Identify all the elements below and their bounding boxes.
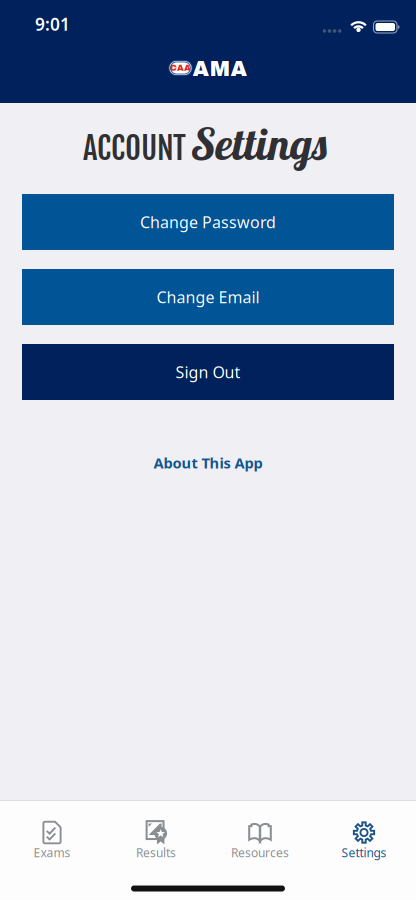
staticText: ACCOUNT — [83, 129, 186, 168]
button[interactable]: Change Email — [22, 269, 394, 325]
button[interactable]: Change Password — [22, 194, 394, 250]
staticText: AMA — [192, 57, 247, 80]
button[interactable]: Resources — [208, 817, 312, 863]
button[interactable]: Exams — [0, 817, 104, 863]
button[interactable]: Sign Out — [22, 344, 394, 400]
staticText: Results — [136, 844, 176, 860]
staticText: 9:01 — [35, 12, 70, 35]
staticText: Exams — [33, 844, 70, 860]
staticText: Settings — [192, 116, 329, 171]
staticText: Change Email — [156, 286, 259, 308]
staticText: CAA — [170, 63, 191, 72]
staticText: Change Password — [140, 211, 276, 233]
button[interactable]: Settings — [312, 817, 416, 863]
staticText: Sign Out — [175, 361, 240, 383]
staticText: Resources — [231, 844, 289, 860]
button[interactable]: About This App — [129, 439, 286, 486]
staticText: About This App — [153, 453, 262, 472]
button[interactable]: Results — [104, 817, 208, 863]
staticText: Settings — [341, 844, 386, 860]
